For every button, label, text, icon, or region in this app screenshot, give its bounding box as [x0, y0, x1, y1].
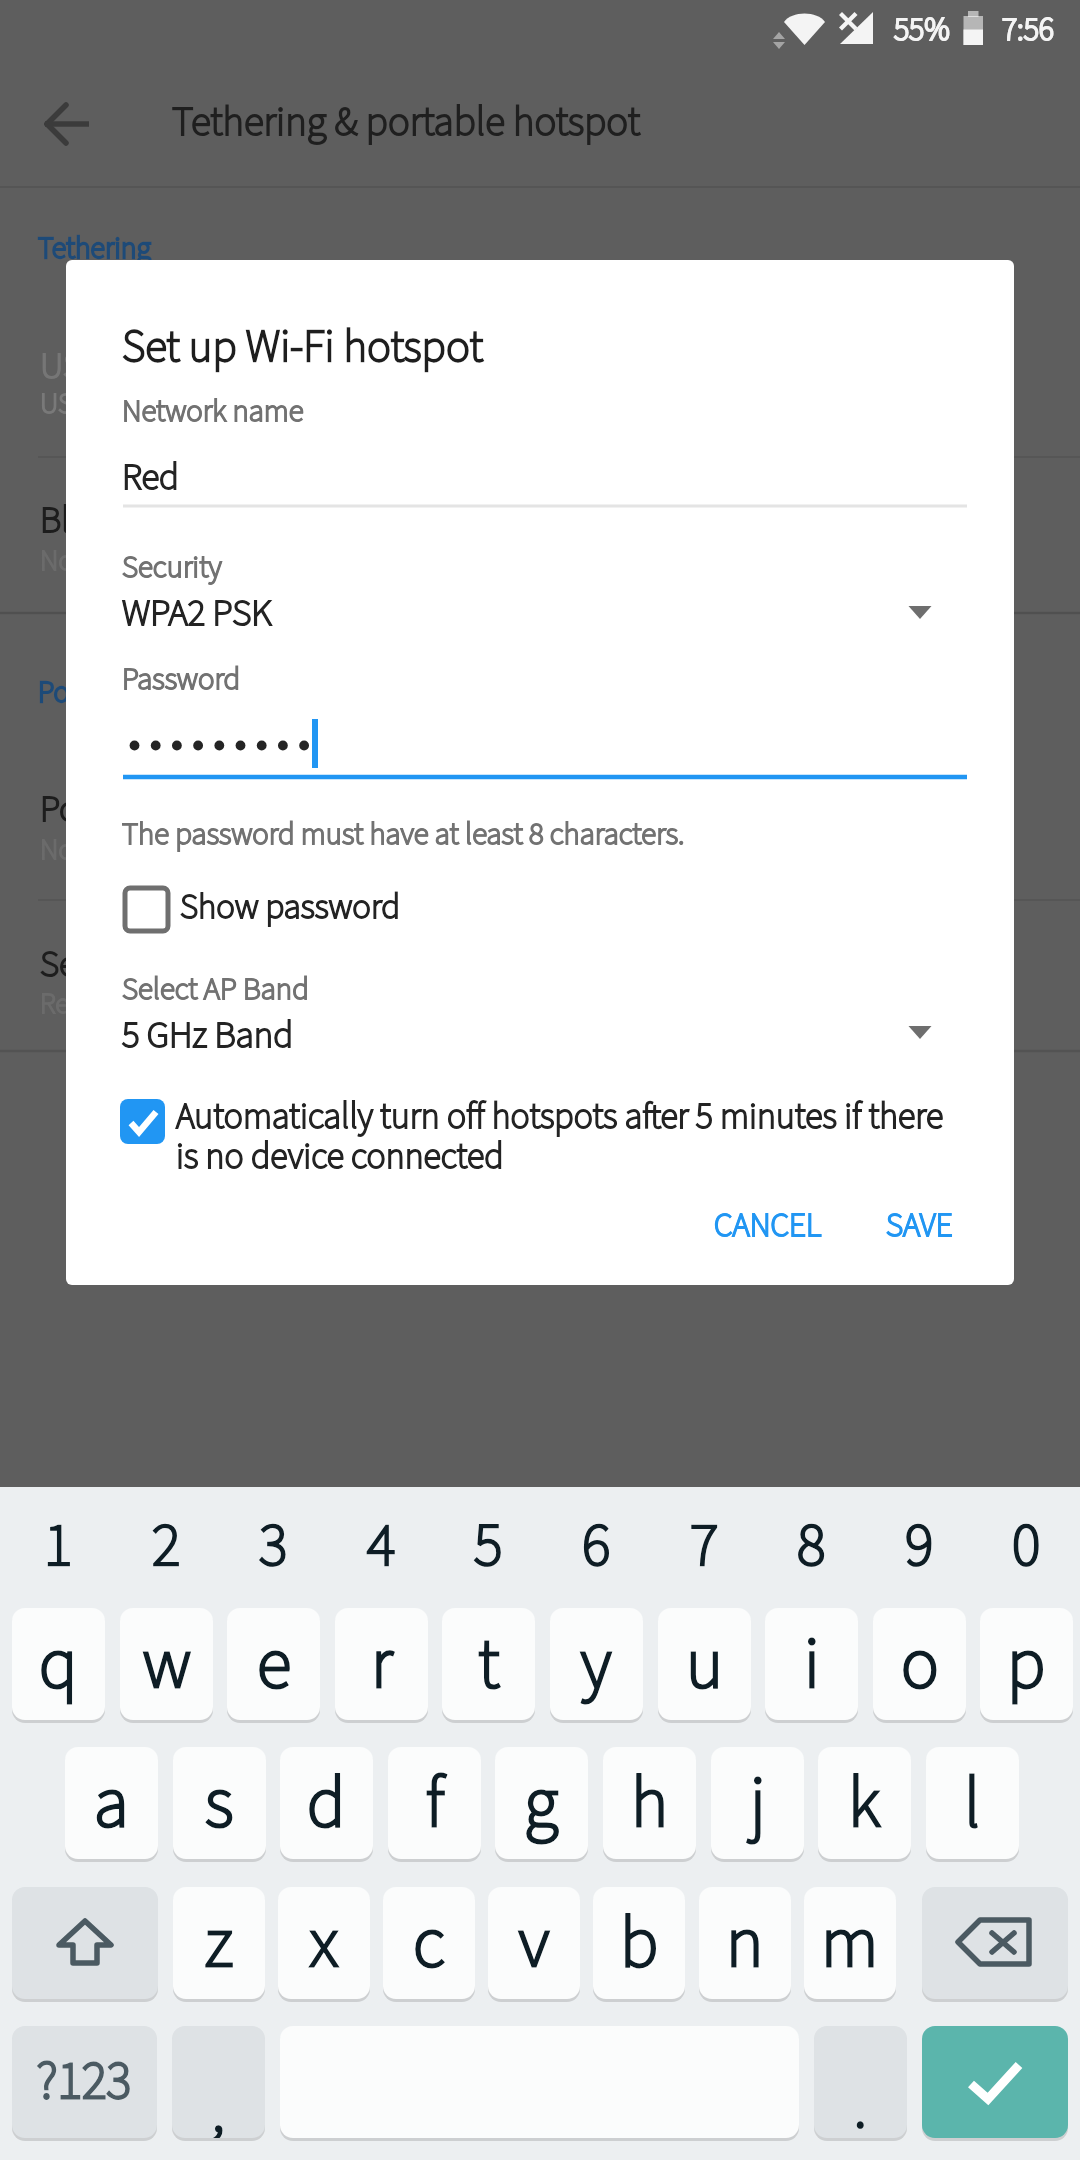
button[interactable]: Enter	[922, 2026, 1068, 2138]
button[interactable]: r	[335, 1608, 428, 1720]
staticText: l	[964, 1753, 981, 1854]
button[interactable]: Delete	[922, 1887, 1068, 1999]
staticText: SAVE	[886, 1202, 953, 1249]
button[interactable]: y	[550, 1608, 643, 1720]
staticText: o	[901, 1614, 939, 1715]
staticText: Red WPA2 PSK portable Wi-Fi hotspot	[40, 983, 471, 1024]
button[interactable]: Comma	[172, 2026, 265, 2138]
button[interactable]: 1	[12, 1495, 105, 1597]
button[interactable]: v	[488, 1887, 580, 1999]
button[interactable]: 0	[980, 1495, 1073, 1597]
staticText: Not sharing this phone's Internet connec…	[40, 829, 553, 870]
staticText: ?123	[37, 2045, 132, 2119]
staticText: e	[257, 1614, 291, 1715]
button[interactable]: l	[926, 1747, 1019, 1859]
button[interactable]: 2	[120, 1495, 213, 1597]
staticText: Select AP Band	[122, 967, 309, 1011]
staticText: g	[524, 1753, 559, 1854]
staticText: CANCEL	[714, 1202, 822, 1249]
staticText: g	[524, 1753, 559, 1854]
button[interactable]: p	[980, 1608, 1073, 1720]
button[interactable]: w	[120, 1608, 213, 1720]
staticText: Automatically turn off hotspots after 5 …	[176, 1091, 966, 1182]
staticText: 5	[474, 1504, 503, 1589]
button[interactable]: q	[12, 1608, 105, 1720]
button[interactable]: x	[278, 1887, 370, 1999]
button[interactable]: o	[873, 1608, 966, 1720]
staticText: Password	[122, 657, 241, 701]
staticText: Security	[122, 545, 222, 589]
staticText: m	[821, 1893, 879, 1994]
staticText: j	[750, 1753, 766, 1854]
staticText: f	[426, 1753, 444, 1854]
staticText: Network name	[122, 389, 304, 433]
staticText: Portable Wi-Fi hotspot	[40, 783, 368, 836]
button[interactable]: 8	[765, 1495, 858, 1597]
staticText: s	[205, 1753, 234, 1854]
button[interactable]: i	[765, 1608, 858, 1720]
staticText: 1	[44, 1504, 73, 1589]
button[interactable]: Navigate up	[30, 87, 104, 161]
staticText: SAVE	[886, 1202, 953, 1249]
staticText: The password must have at least 8 charac…	[122, 812, 685, 856]
staticText: h	[631, 1753, 669, 1854]
staticText: o	[901, 1614, 939, 1715]
button[interactable]: z	[173, 1887, 265, 1999]
button[interactable]: ?123	[12, 2026, 157, 2138]
staticText: a	[94, 1753, 129, 1854]
button[interactable]: Automatically turn off hotspots after 5 …	[120, 1092, 1010, 1183]
staticText: 7	[690, 1504, 719, 1589]
staticText: 7	[690, 1504, 719, 1589]
staticText: s	[205, 1753, 234, 1854]
button[interactable]: m	[804, 1887, 896, 1999]
staticText: Portable Wi-Fi hotspot	[40, 783, 368, 836]
staticText: Set up Wi-Fi hotspot	[40, 938, 337, 991]
staticText: Password	[122, 657, 241, 701]
button[interactable]: d	[280, 1747, 373, 1859]
staticText: q	[39, 1614, 78, 1715]
staticText: Red	[122, 451, 180, 504]
button[interactable]: Show password	[116, 873, 516, 945]
button[interactable]: 7	[658, 1495, 751, 1597]
button[interactable]: 6	[550, 1495, 643, 1597]
button[interactable]: n	[699, 1887, 791, 1999]
staticText: z	[205, 1893, 234, 1994]
button[interactable]: f	[388, 1747, 481, 1859]
staticText: j	[750, 1753, 766, 1854]
staticText: x	[310, 1893, 338, 1994]
button[interactable]: CANCEL	[689, 1181, 846, 1269]
button[interactable]: a	[65, 1747, 158, 1859]
button[interactable]: Period	[814, 2026, 907, 2138]
button[interactable]: j	[711, 1747, 804, 1859]
button[interactable]: b	[593, 1887, 685, 1999]
button[interactable]: SAVE	[863, 1181, 975, 1269]
button[interactable]: 4	[335, 1495, 428, 1597]
staticText: Not sharing this phone's Internet connec…	[40, 540, 553, 581]
button[interactable]: 9	[873, 1495, 966, 1597]
staticText: a	[94, 1753, 129, 1854]
button[interactable]: 5	[442, 1495, 535, 1597]
button[interactable]: 3	[227, 1495, 320, 1597]
staticText: 0	[1012, 1504, 1041, 1589]
staticText: b	[620, 1893, 659, 1994]
button[interactable]: c	[383, 1887, 475, 1999]
staticText: 3	[259, 1504, 288, 1589]
staticText: 6	[582, 1504, 611, 1589]
button[interactable]: s	[173, 1747, 266, 1859]
staticText: y	[581, 1614, 612, 1715]
staticText: USB tethering	[40, 340, 244, 393]
button[interactable]: u	[658, 1608, 751, 1720]
button[interactable]: g	[495, 1747, 588, 1859]
staticText: Tethering	[38, 227, 151, 270]
button[interactable]: k	[818, 1747, 911, 1859]
staticText: u	[686, 1614, 724, 1715]
button[interactable]: t	[442, 1608, 535, 1720]
staticText: z	[205, 1893, 234, 1994]
button[interactable]: Shift	[12, 1887, 158, 1999]
button[interactable]: h	[603, 1747, 696, 1859]
button[interactable]: e	[227, 1608, 320, 1720]
staticText: w	[143, 1614, 191, 1715]
staticText: Tethering & portable hotspot	[172, 93, 641, 151]
staticText: Portable hotspot	[38, 671, 238, 714]
